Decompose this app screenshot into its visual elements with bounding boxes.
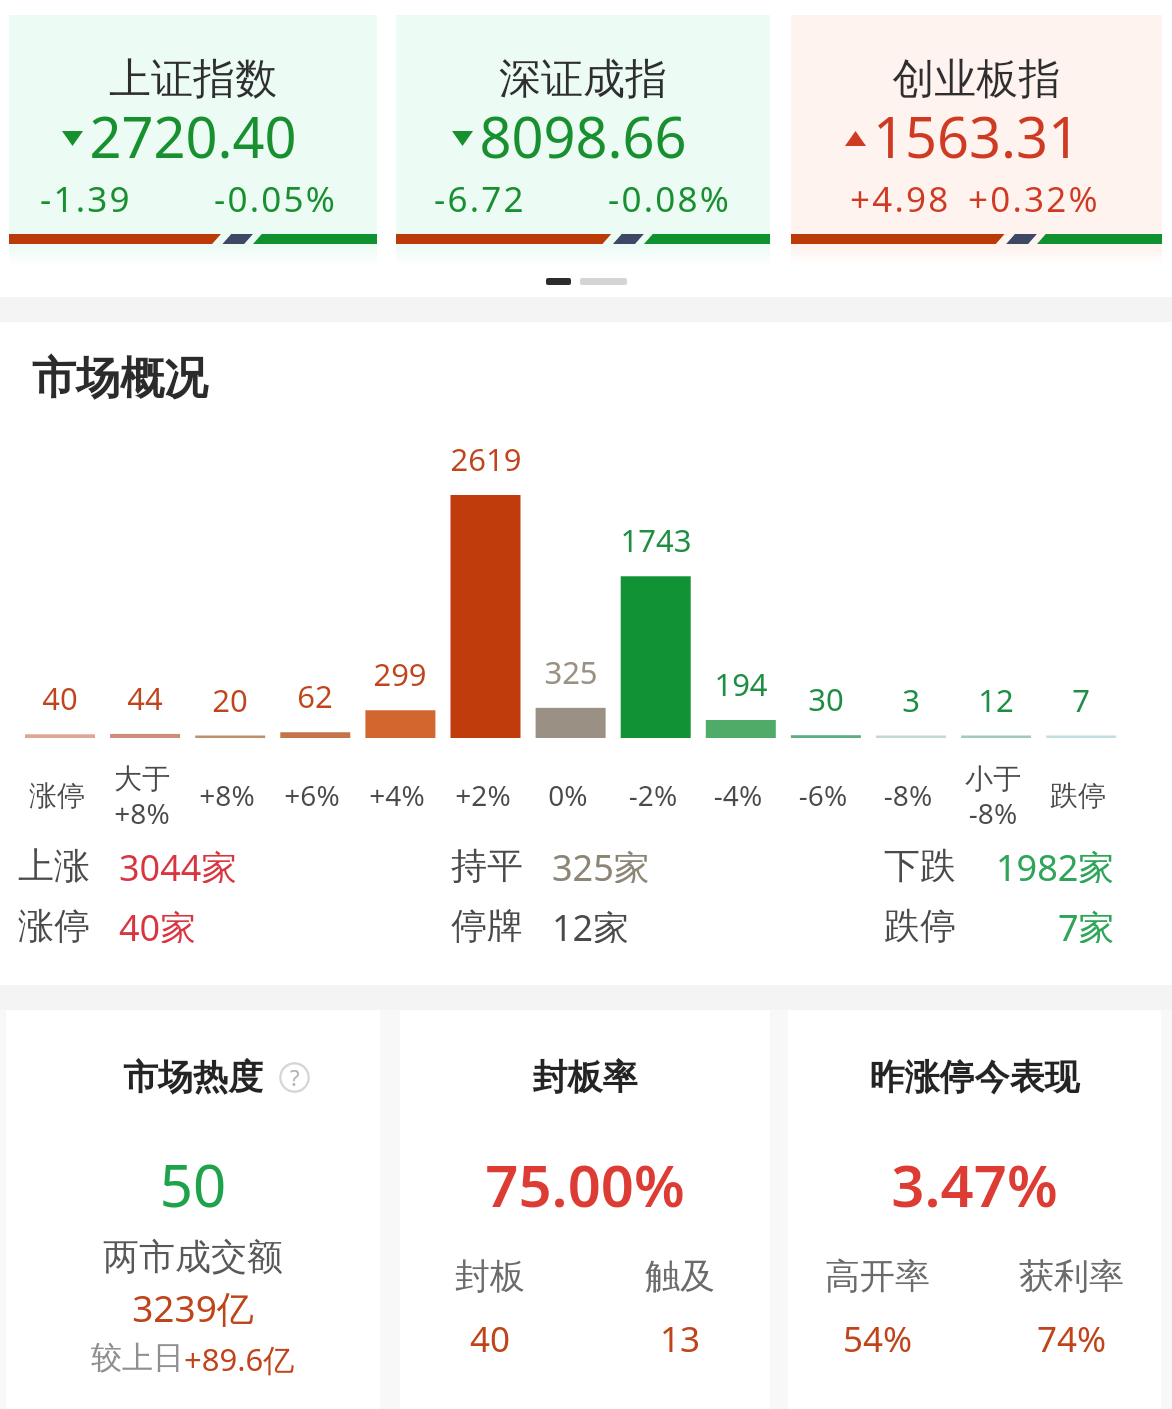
button[interactable]: 深证成指: [396, 15, 770, 265]
staticText: 两市成交额: [6, 1234, 380, 1279]
staticText: 创业板指: [791, 53, 1162, 106]
staticText: 12家: [552, 903, 630, 943]
button[interactable]: 封板率: [400, 1010, 770, 1409]
staticText: +6%: [268, 776, 356, 814]
staticText: -8%: [864, 776, 952, 814]
staticText: 74%: [885, 1315, 1172, 1363]
staticText: 深证成指: [396, 53, 770, 106]
staticText: 3.47%: [788, 1145, 1161, 1224]
staticText: 封板率: [400, 1055, 770, 1099]
staticText: 上涨: [18, 843, 90, 883]
staticText: 触及: [495, 1254, 865, 1298]
staticText: 获利率: [885, 1254, 1172, 1298]
staticText: 20: [187, 679, 273, 721]
staticText: +4%: [353, 776, 441, 814]
staticText: 涨停: [13, 778, 101, 813]
staticText: 封板: [305, 1254, 675, 1298]
staticText: 2619: [443, 438, 529, 480]
staticText: -0.05%: [214, 175, 337, 223]
staticText: 40: [17, 677, 103, 719]
staticText: +2%: [439, 776, 527, 814]
staticText: 市场概况: [32, 351, 208, 406]
staticText: 40: [305, 1315, 675, 1363]
staticText: 40家: [119, 903, 197, 943]
staticText: 62: [272, 675, 358, 717]
button[interactable]: Page 2: [580, 278, 627, 285]
staticText: 市场热度: [6, 1055, 380, 1099]
staticText: 54%: [691, 1315, 1064, 1363]
staticText: -4%: [694, 776, 782, 814]
staticText: 昨涨停今表现: [788, 1055, 1161, 1099]
staticText: 较上日: [91, 1338, 184, 1377]
staticText: +89.6亿: [184, 1338, 295, 1380]
staticText: 3239亿: [6, 1282, 380, 1333]
staticText: 高开率: [691, 1254, 1064, 1298]
staticText: 上证指数: [9, 53, 377, 106]
staticText: 30: [783, 678, 869, 720]
staticText: -6%: [779, 776, 867, 814]
staticText: 8098.66: [396, 98, 770, 174]
staticText: 2720.40: [9, 98, 377, 174]
button[interactable]: 创业板指: [791, 15, 1162, 265]
staticText: -0.08%: [608, 175, 731, 223]
staticText: 3044家: [119, 843, 238, 883]
staticText: 44: [102, 677, 188, 719]
staticText: 大于 +8%: [98, 761, 186, 829]
staticText: 持平: [451, 843, 523, 883]
button[interactable]: 昨涨停今表现: [788, 1010, 1161, 1409]
staticText: 75.00%: [400, 1145, 770, 1224]
staticText: -2%: [609, 776, 697, 814]
button[interactable]: Page 1: [546, 278, 571, 285]
staticText: 194: [698, 663, 784, 705]
staticText: 1982家: [996, 843, 1115, 883]
staticText: 325: [528, 651, 614, 693]
staticText: 停牌: [451, 903, 523, 943]
staticText: 50: [6, 1145, 380, 1224]
button[interactable]: 市场热度: [6, 1010, 380, 1409]
staticText: 小于 -8%: [949, 761, 1037, 829]
staticText: ?: [290, 1062, 300, 1092]
staticText: 下跌: [884, 843, 956, 883]
staticText: 跌停: [884, 903, 956, 943]
staticText: +4.98: [850, 175, 951, 223]
staticText: 3: [868, 679, 954, 721]
button[interactable]: Help: what is market heat: [279, 1062, 310, 1093]
staticText: -1.39: [40, 175, 132, 223]
staticText: 1563.31: [791, 98, 1162, 174]
staticText: 13: [495, 1315, 865, 1363]
staticText: 涨停: [18, 903, 90, 943]
staticText: 12: [953, 679, 1039, 721]
staticText: 299: [357, 653, 443, 695]
staticText: 325家: [552, 843, 650, 883]
staticText: 跌停: [1034, 778, 1122, 813]
staticText: 1743: [613, 519, 699, 561]
staticText: 7: [1038, 679, 1124, 721]
staticText: 0%: [524, 776, 612, 814]
staticText: +8%: [183, 776, 271, 814]
button[interactable]: 上证指数: [9, 15, 377, 265]
staticText: -6.72: [434, 175, 526, 223]
staticText: 7家: [1058, 903, 1115, 943]
staticText: +0.32%: [968, 175, 1100, 223]
